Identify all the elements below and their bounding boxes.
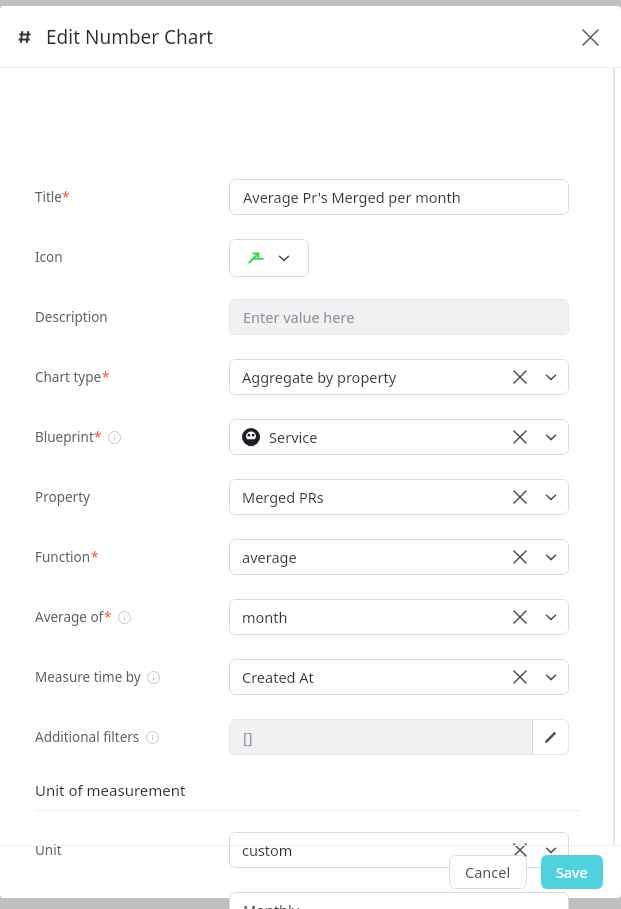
staticText: Aggregate by property [242, 367, 397, 387]
staticText: Blueprint [35, 428, 94, 446]
button[interactable]: Close [572, 19, 608, 55]
staticText: average [242, 547, 297, 567]
staticText: Icon [35, 248, 63, 266]
staticText: * [102, 368, 110, 386]
staticText: Property [35, 488, 90, 506]
button[interactable]: Monthly [229, 892, 569, 909]
staticText: Monthly [243, 900, 300, 909]
staticText: Title [35, 188, 62, 206]
staticText: Chart type [35, 368, 102, 386]
button[interactable]: Clear [507, 604, 533, 630]
button[interactable]: Clear [507, 484, 533, 510]
staticText: Measure time by [35, 668, 141, 686]
staticText: Description [35, 308, 108, 326]
button[interactable]: Average Pr's Merged per month [229, 179, 569, 215]
staticText: Enter value here [243, 307, 355, 327]
staticText: Average of [35, 608, 104, 626]
button[interactable]: Clear [507, 664, 533, 690]
button[interactable]: Save [541, 855, 603, 889]
staticText: Service [269, 427, 318, 447]
staticText: * [62, 188, 70, 206]
button[interactable]: Open dropdown [538, 544, 564, 570]
staticText: * [91, 548, 99, 566]
other: More info [146, 731, 159, 744]
other: More info [118, 611, 131, 624]
button[interactable]: Clear [507, 837, 533, 863]
staticText: Merged PRs [242, 487, 324, 507]
button[interactable]: Enter value here [229, 299, 569, 335]
staticText: Save [556, 862, 588, 882]
button[interactable]: Clear [507, 364, 533, 390]
staticText: custom [242, 840, 293, 860]
button[interactable]: Open dropdown [538, 484, 564, 510]
button[interactable]: Merged PRs [229, 479, 569, 515]
button[interactable]: Open dropdown [538, 424, 564, 450]
staticText: Created At [242, 667, 314, 687]
button[interactable]: Service [229, 419, 569, 455]
button[interactable]: custom [229, 832, 569, 868]
staticText: Cancel [465, 862, 511, 882]
button[interactable]: Cancel [449, 855, 527, 889]
button[interactable]: Created At [229, 659, 569, 695]
button[interactable]: Open dropdown [538, 364, 564, 390]
button[interactable]: Edit filters [532, 719, 569, 755]
button[interactable]: Open dropdown [538, 837, 564, 863]
staticText: Function [35, 548, 91, 566]
other: More info [147, 671, 160, 684]
button[interactable]: Open dropdown [538, 664, 564, 690]
staticText: month [242, 607, 288, 627]
staticText: * [104, 608, 112, 626]
button[interactable]: Aggregate by property [229, 359, 569, 395]
button[interactable]: Select icon [229, 239, 309, 277]
button[interactable]: Clear [507, 544, 533, 570]
button[interactable]: Open dropdown [538, 604, 564, 630]
staticText: Unit of measurement [35, 780, 186, 800]
staticText: [] [243, 727, 253, 747]
button[interactable]: month [229, 599, 569, 635]
other: More info [108, 431, 121, 444]
button[interactable]: Clear [507, 424, 533, 450]
staticText: Additional filters [35, 728, 140, 746]
staticText: Average Pr's Merged per month [243, 187, 461, 207]
button[interactable]: average [229, 539, 569, 575]
staticText: Edit Number Chart [46, 24, 214, 50]
staticText: * [94, 428, 102, 446]
staticText: Unit [35, 841, 62, 859]
